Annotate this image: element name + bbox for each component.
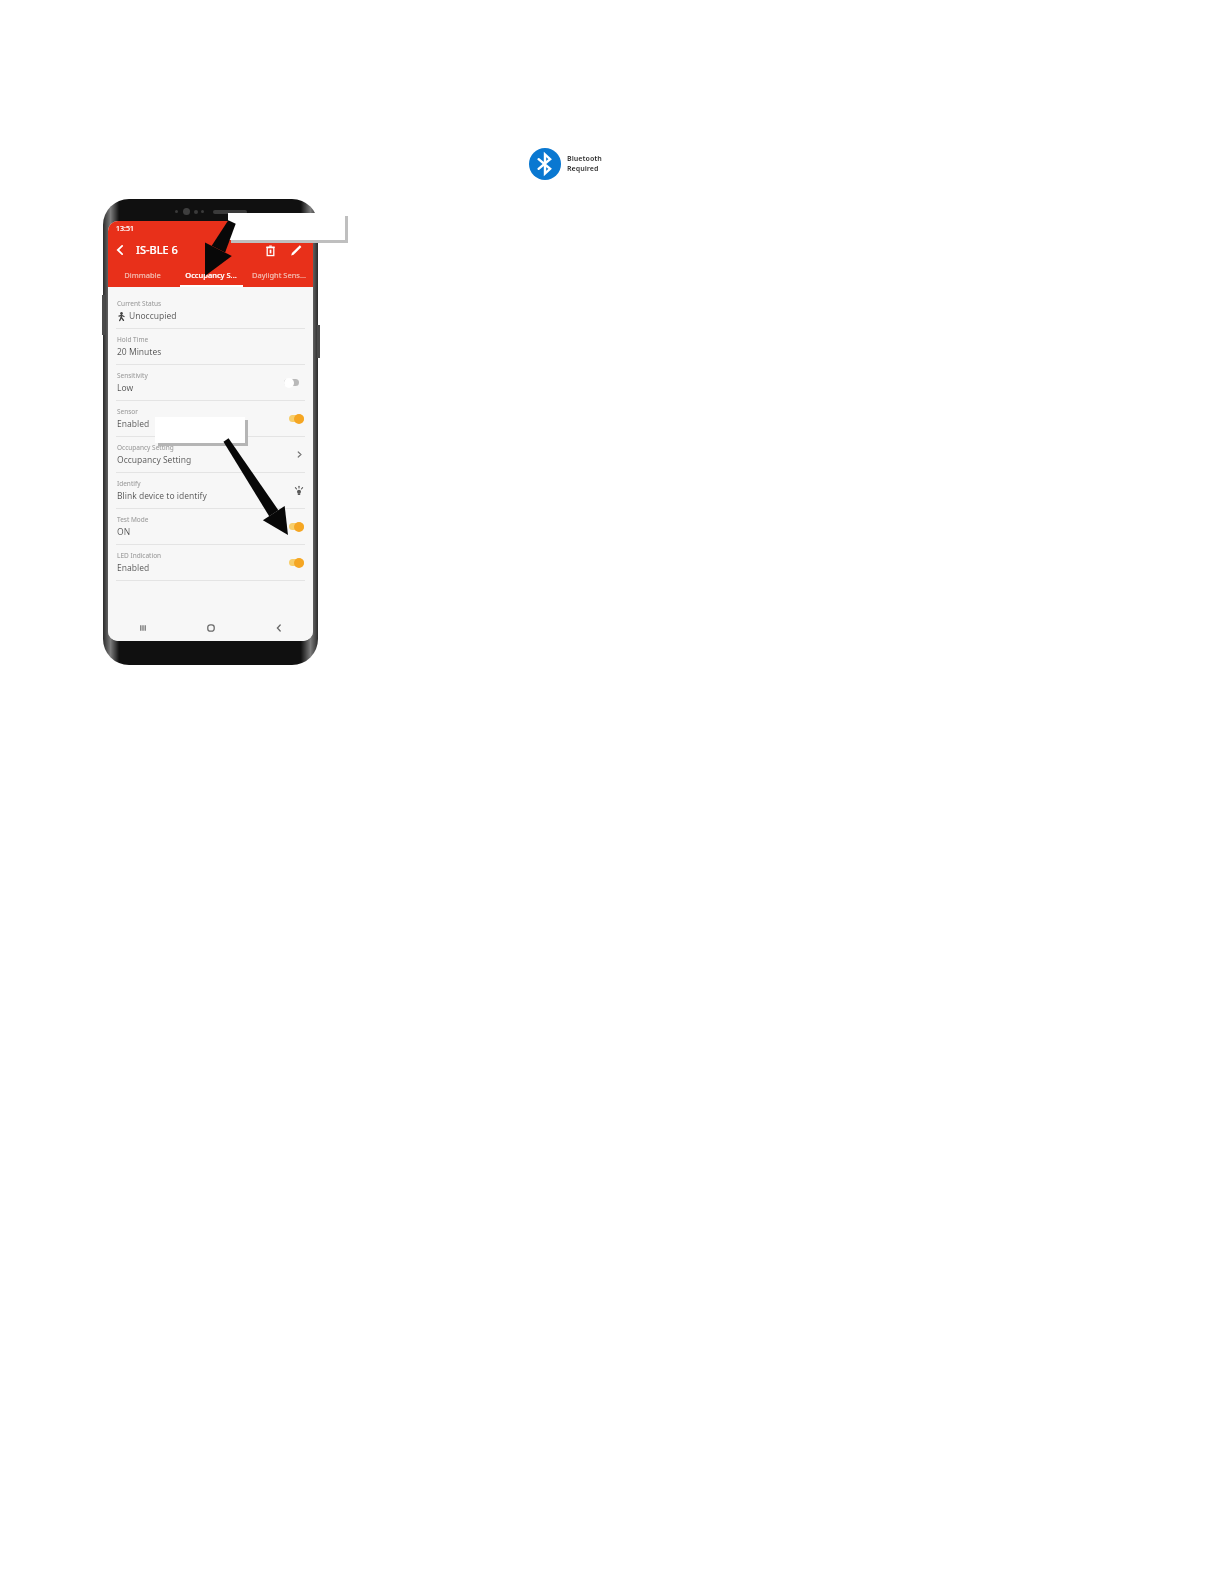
staticText: Unoccupied <box>129 310 177 322</box>
button[interactable] <box>284 413 304 424</box>
button[interactable]: Recents <box>108 615 177 641</box>
button[interactable]: LED Indication <box>108 545 313 581</box>
button[interactable]: Sensitivity <box>108 365 313 401</box>
staticText: Blink device to identify <box>117 490 207 502</box>
staticText: Occupancy S... <box>185 270 237 280</box>
button[interactable]: Test Mode <box>108 509 313 545</box>
staticText: Test Mode <box>117 515 149 524</box>
button[interactable]: Occupancy S... <box>177 263 245 287</box>
button[interactable]: Occupancy Setting <box>108 437 313 473</box>
button[interactable]: Edit <box>283 237 309 263</box>
staticText: 20 Minutes <box>117 346 162 358</box>
button[interactable]: Identify <box>108 473 313 509</box>
staticText: Hold Time <box>117 335 149 344</box>
staticText: Dimmable <box>124 270 161 280</box>
button[interactable] <box>284 377 304 388</box>
button[interactable]: Back <box>108 238 132 262</box>
staticText: Enabled <box>117 562 150 574</box>
staticText: IS-BLE 6 <box>136 242 178 257</box>
button[interactable] <box>284 557 304 568</box>
staticText: Enabled <box>117 418 150 430</box>
staticText: 13:51 <box>116 224 134 234</box>
staticText: Current Status <box>117 299 162 308</box>
staticText: Low <box>117 382 134 394</box>
staticText: Occupancy Setting <box>117 454 192 466</box>
staticText: ON <box>117 526 131 538</box>
button[interactable]: Back <box>245 615 313 641</box>
staticText: Required <box>567 164 599 174</box>
staticText: Sensor <box>117 407 138 416</box>
button[interactable]: Daylight Sens... <box>245 263 313 287</box>
button[interactable]: Home <box>177 615 245 641</box>
staticText: Daylight Sens... <box>252 270 306 280</box>
staticText: Occupancy Setting <box>117 443 174 452</box>
staticText: Sensitivity <box>117 371 148 380</box>
staticText: LED Indication <box>117 551 162 560</box>
button[interactable] <box>284 521 304 532</box>
button[interactable]: Hold Time <box>108 329 313 365</box>
staticText: Bluetooth <box>567 154 602 164</box>
button[interactable]: Dimmable <box>108 263 177 287</box>
button[interactable]: Sensor <box>108 401 313 437</box>
button[interactable]: Current Status <box>108 293 313 329</box>
button[interactable]: Delete <box>257 237 283 263</box>
staticText: Identify <box>117 479 141 488</box>
